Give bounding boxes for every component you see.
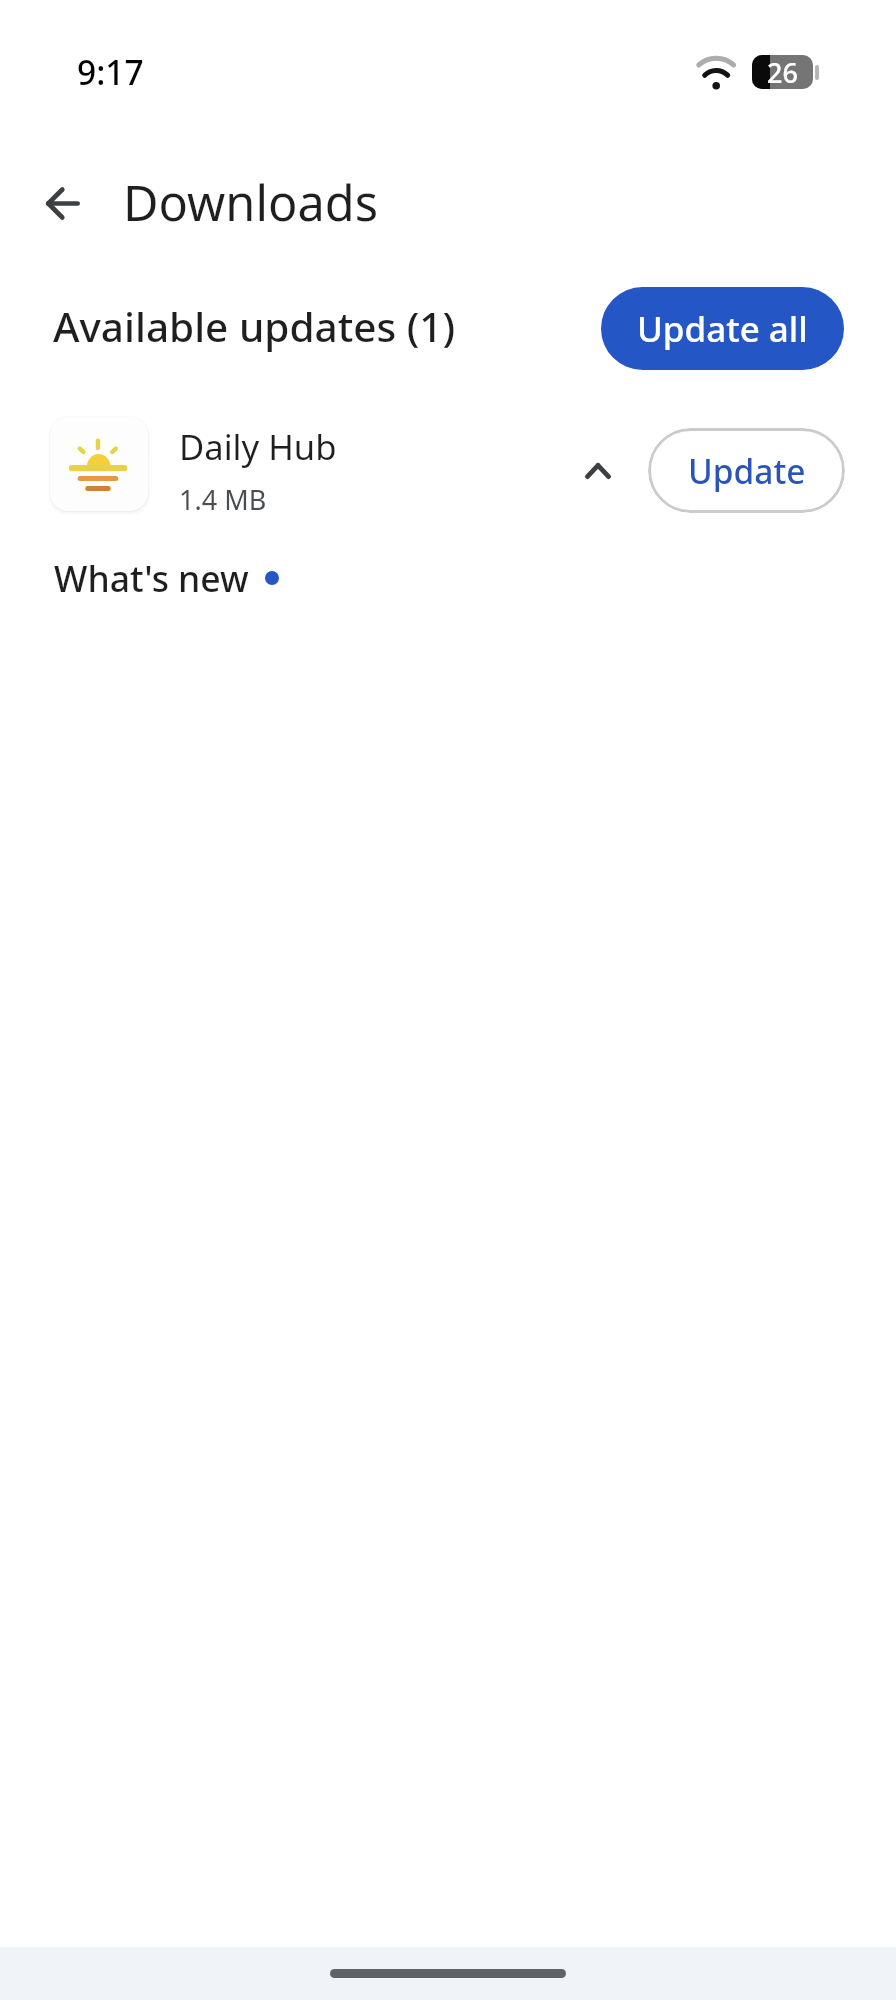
button[interactable]: Collapse details (560, 433, 636, 509)
staticText: 26 (767, 55, 798, 88)
button[interactable]: Back (15, 155, 111, 251)
button[interactable]: Daily Hub (0, 401, 896, 529)
staticText: 1.4 MB (179, 481, 267, 518)
staticText: 9:17 (77, 49, 144, 95)
button[interactable]: What's new (54, 551, 279, 605)
staticText: Daily Hub (179, 423, 337, 470)
other: Wi-Fi connected (694, 54, 738, 90)
button[interactable]: Update (648, 428, 845, 513)
other: Battery 26 percent (752, 55, 813, 89)
staticText: Available updates (1) (53, 299, 456, 354)
staticText: Update all (637, 305, 808, 353)
staticText: Downloads (123, 169, 378, 235)
staticText: Update (688, 448, 806, 494)
staticText: What's new (54, 554, 249, 602)
button[interactable]: Update all (601, 287, 844, 370)
